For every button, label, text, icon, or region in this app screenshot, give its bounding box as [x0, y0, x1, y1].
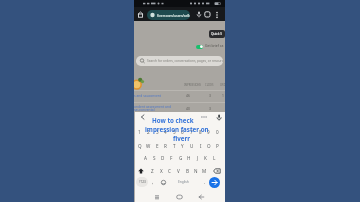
button[interactable]: Y [178, 141, 187, 151]
button[interactable]: C [165, 166, 174, 176]
staticText: . [204, 179, 206, 185]
button[interactable]: fiverr.com/users/seller [147, 10, 190, 20]
button[interactable]: 6 [178, 127, 187, 136]
button[interactable]: 4 [161, 127, 170, 136]
staticText: ?123 [139, 180, 146, 184]
button[interactable]: ?123 [136, 177, 148, 187]
button[interactable] [137, 11, 144, 18]
staticText: 3 [209, 93, 211, 97]
button[interactable] [196, 11, 202, 18]
button[interactable]: D [158, 153, 167, 163]
staticText: X [160, 168, 163, 174]
staticText: sauconvental [134, 107, 155, 111]
staticText: 5 [173, 129, 176, 135]
staticText: fiverr.com/users/seller [157, 13, 190, 18]
staticText: 1 [138, 129, 141, 135]
staticText: A [144, 155, 147, 161]
button[interactable]: X [157, 166, 166, 176]
staticText: K [204, 155, 207, 161]
staticText: IMPRESSIONS [184, 83, 202, 87]
button[interactable]: V [174, 166, 183, 176]
staticText: J [197, 155, 199, 161]
staticText: G [179, 155, 183, 161]
staticText: How to check [152, 116, 194, 124]
staticText: N [194, 168, 198, 174]
staticText: 0 [216, 129, 219, 135]
staticText: s and sauconvent [134, 93, 162, 97]
button[interactable]: E [153, 141, 162, 151]
button[interactable]: F [167, 153, 176, 163]
button[interactable]: Z [148, 166, 157, 176]
button[interactable] [209, 177, 220, 188]
staticText: Get brief ca [205, 43, 224, 48]
staticText: Quick S [211, 32, 223, 36]
staticText: 3 [209, 106, 211, 110]
staticText: 1 [222, 93, 224, 97]
button[interactable]: 5 [170, 127, 179, 136]
staticText: 2 [147, 129, 150, 135]
button[interactable]: 9 [204, 127, 213, 136]
button[interactable]: J [193, 153, 202, 163]
button[interactable] [214, 11, 220, 19]
button[interactable]: Quick S [209, 30, 225, 38]
button[interactable]: W [144, 141, 153, 151]
button[interactable] [213, 168, 221, 174]
button[interactable]: O [204, 141, 213, 151]
button[interactable]: K [201, 153, 210, 163]
staticText: ondent assessment and [134, 104, 171, 108]
button[interactable]: , [149, 177, 156, 187]
button[interactable]: Search for orders, conversations, pages,… [136, 56, 223, 66]
button[interactable]: B [183, 166, 192, 176]
staticText: 8 [199, 129, 202, 135]
staticText: D [161, 155, 165, 161]
staticText: Y [181, 143, 184, 149]
staticText: V [177, 168, 180, 174]
button[interactable]: 0 [213, 127, 222, 136]
button[interactable]: L [210, 153, 219, 163]
staticText: H [187, 155, 191, 161]
button[interactable]: I [196, 141, 205, 151]
button[interactable] [198, 194, 205, 200]
button[interactable] [176, 194, 183, 200]
button[interactable]: M [200, 166, 209, 176]
staticText: U [190, 143, 194, 149]
staticText: ORD [220, 83, 225, 87]
button[interactable]: P [213, 141, 222, 151]
button[interactable]: U [187, 141, 196, 151]
staticText: R [164, 143, 167, 149]
staticText: fiverr [173, 134, 190, 142]
staticText: Z [151, 168, 154, 174]
staticText: Q [138, 143, 142, 149]
button[interactable] [204, 11, 211, 18]
staticText: S [153, 155, 156, 161]
button[interactable]: 8 [196, 127, 205, 136]
staticText: 4 [164, 129, 167, 135]
button[interactable]: 2 [144, 127, 153, 136]
staticText: C [168, 168, 171, 174]
button[interactable]: 7 [187, 127, 196, 136]
button[interactable]: T [170, 141, 179, 151]
button[interactable]: R [161, 141, 170, 151]
button[interactable]: N [191, 166, 200, 176]
staticText: 46 [186, 93, 190, 97]
staticText: B [186, 168, 189, 174]
button[interactable] [161, 180, 166, 185]
button[interactable]: G [176, 153, 185, 163]
staticText: E [156, 143, 159, 149]
staticText: 6 [181, 129, 184, 135]
staticText: W [146, 143, 151, 149]
button[interactable]: English [165, 177, 202, 187]
button[interactable]: S [150, 153, 159, 163]
button[interactable]: 3 [153, 127, 162, 136]
button[interactable]: . [202, 177, 208, 187]
staticText: Search for orders, conversations, pages,… [147, 59, 223, 63]
button[interactable]: A [141, 153, 150, 163]
button[interactable]: H [184, 153, 193, 163]
staticText: P [216, 143, 219, 149]
button[interactable] [196, 45, 203, 49]
staticText: I [200, 143, 202, 149]
button[interactable]: Q [135, 141, 144, 151]
button[interactable] [154, 194, 160, 200]
button[interactable]: 1 [135, 127, 144, 136]
staticText: F [170, 155, 173, 161]
